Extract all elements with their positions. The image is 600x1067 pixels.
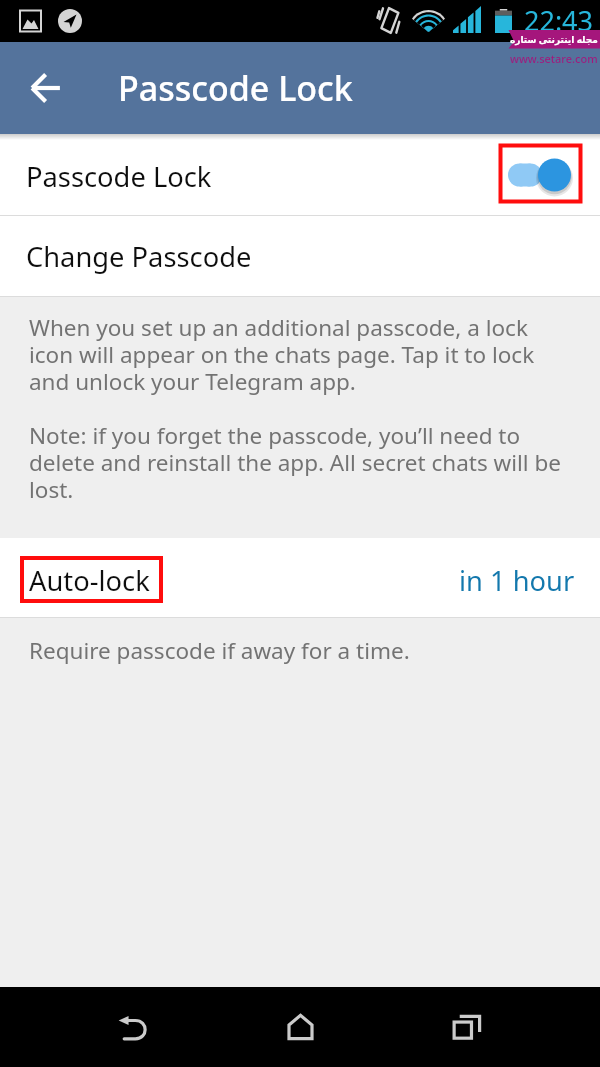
staticText: مجله اینترنتی ستاره (510, 33, 598, 45)
staticText: Passcode Lock (26, 158, 212, 195)
staticText: Passcode Lock (118, 65, 353, 111)
staticText: 22:43 (524, 2, 594, 39)
button[interactable]: Toggle Passcode Lock (506, 152, 578, 198)
button[interactable]: Change Passcode (0, 216, 600, 296)
button[interactable]: Auto-lock (0, 538, 600, 617)
button[interactable]: Back (93, 987, 173, 1067)
staticText: Auto-lock (29, 562, 150, 599)
staticText: Change Passcode (26, 238, 252, 275)
staticText: in 1 hour (459, 562, 575, 599)
button[interactable]: Back (18, 60, 74, 116)
staticText: When you set up an additional passcode, … (29, 312, 574, 397)
button[interactable]: Recent apps (427, 987, 507, 1067)
button[interactable]: Passcode Lock (0, 134, 600, 215)
button[interactable]: Home (260, 987, 340, 1067)
staticText: Require passcode if away for a time. (29, 635, 410, 666)
staticText: www.setare.com (510, 51, 598, 66)
staticText: Note: if you forget the passcode, you’ll… (29, 420, 574, 505)
